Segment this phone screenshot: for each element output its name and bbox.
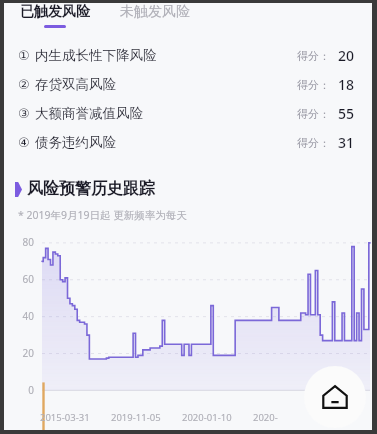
staticText: 得分： (297, 78, 330, 92)
staticText: * 2019年9月19日起 更新频率为每天 (18, 208, 187, 222)
staticText: 18 (332, 75, 354, 94)
staticText: 得分： (297, 136, 330, 150)
staticText: 2015-03-31 (40, 411, 90, 424)
staticText: 2019-11-05 (111, 411, 161, 424)
button[interactable]: ① (4, 41, 372, 70)
staticText: 55 (332, 104, 354, 123)
staticText: ① (18, 48, 30, 63)
staticText: 40 (8, 309, 34, 323)
button[interactable]: ④ (4, 128, 372, 157)
staticText: 0 (8, 383, 34, 397)
staticText: 60 (8, 272, 34, 286)
staticText: 内生成长性下降风险 (35, 47, 157, 64)
staticText: ③ (18, 106, 30, 121)
staticText: 大额商誉减值风险 (35, 105, 143, 122)
staticText: 2020- (253, 411, 278, 424)
button[interactable]: ② (4, 70, 372, 99)
staticText: 得分： (297, 107, 330, 121)
button[interactable]: ③ (4, 99, 372, 128)
staticText: 风险预警历史跟踪 (27, 179, 155, 199)
staticText: 得分： (297, 49, 330, 63)
staticText: ② (18, 77, 30, 92)
staticText: 2020-01-10 (182, 411, 232, 424)
button[interactable]: Home (304, 366, 366, 428)
staticText: 已触发风险 (20, 3, 90, 21)
staticText: 20 (332, 46, 354, 65)
staticText: 未触发风险 (120, 3, 190, 21)
staticText: 20 (8, 346, 34, 360)
button[interactable]: 未触发风险 (118, 3, 192, 21)
staticText: 31 (332, 133, 354, 152)
staticText: ④ (18, 135, 30, 150)
button[interactable]: 已触发风险 (18, 3, 92, 28)
staticText: 80 (8, 235, 34, 249)
staticText: 存贷双高风险 (35, 76, 116, 93)
staticText: 债务违约风险 (35, 134, 116, 151)
